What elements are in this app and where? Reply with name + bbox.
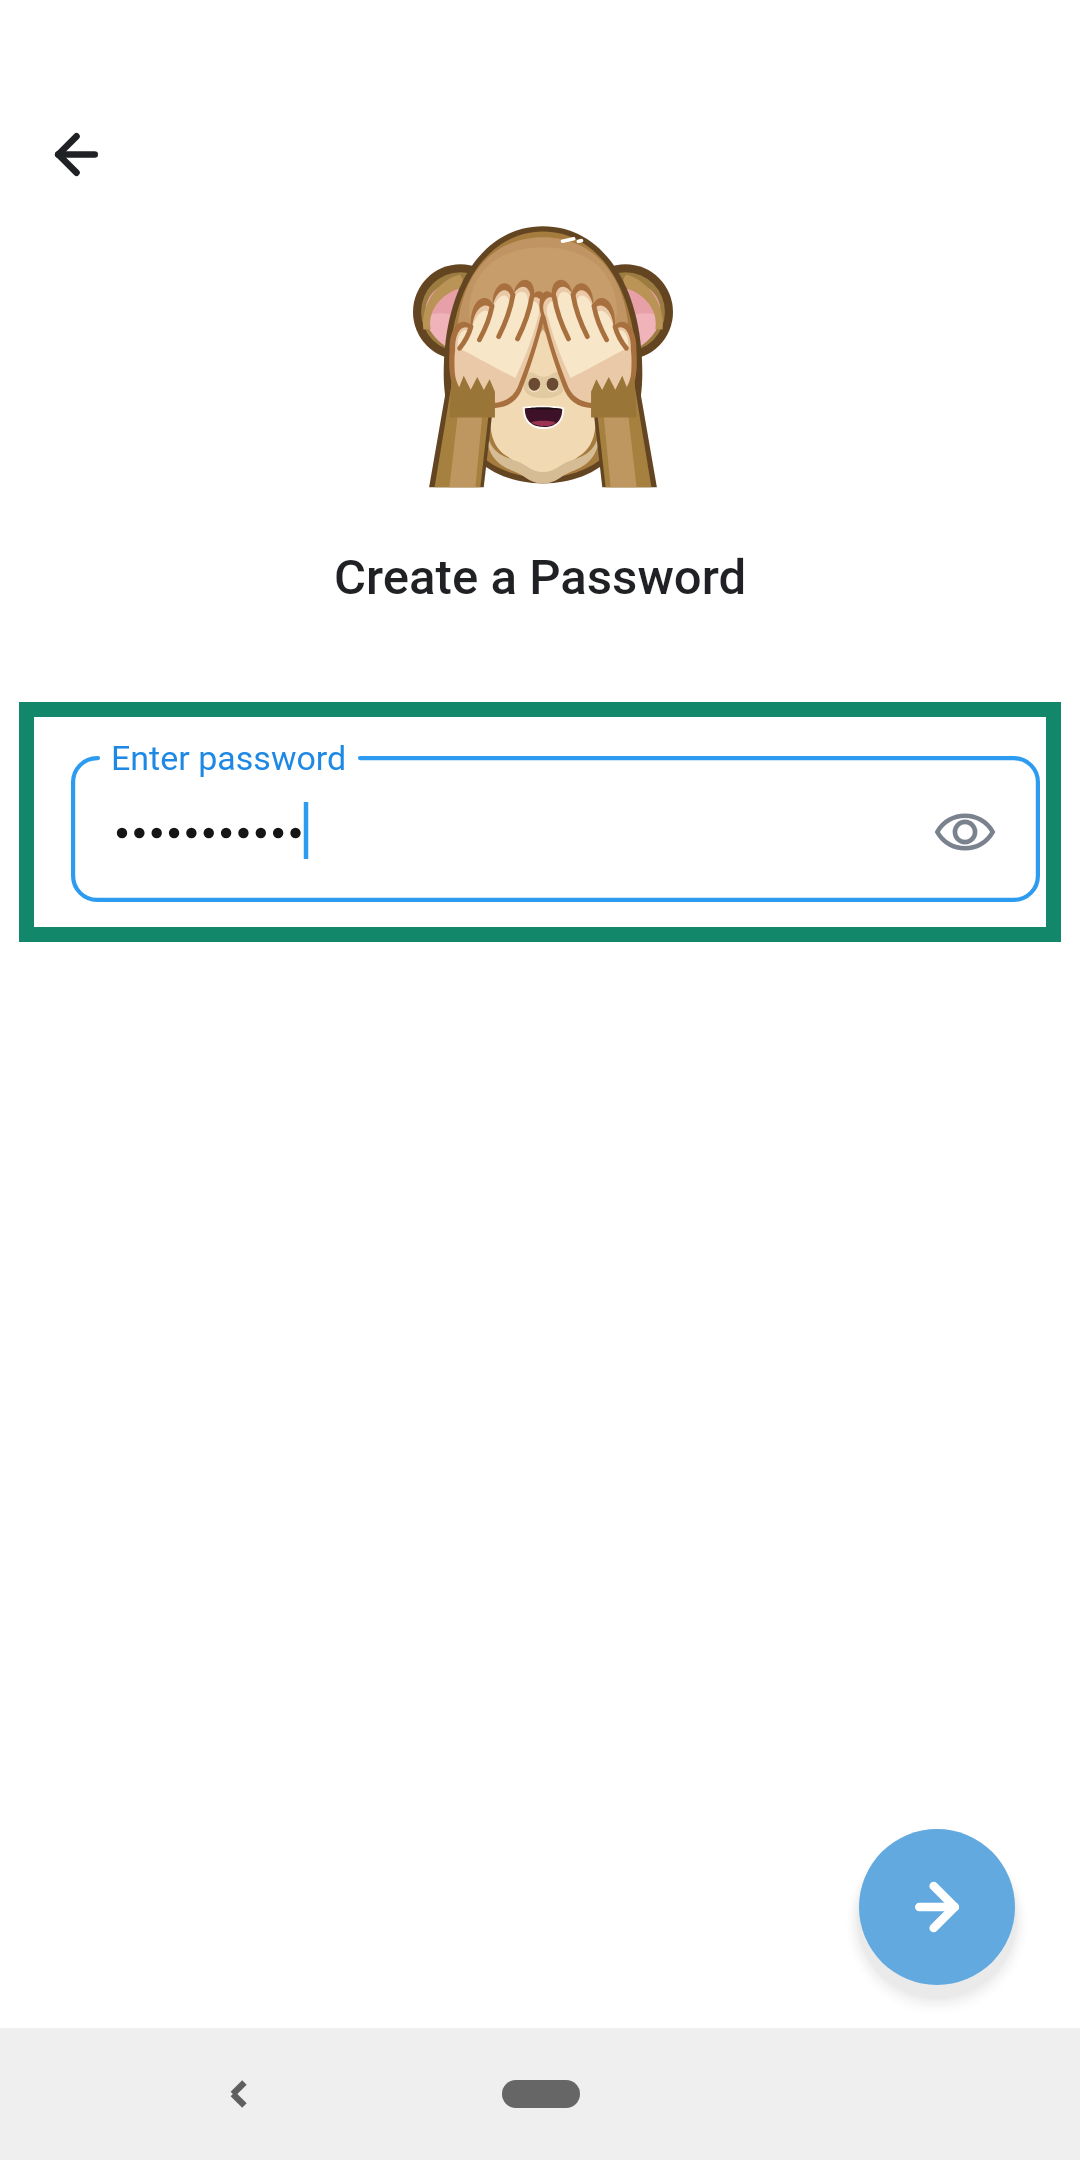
button[interactable]: Home	[502, 2080, 580, 2108]
button[interactable]: Back	[190, 2046, 286, 2142]
button[interactable]: Next	[859, 1829, 1015, 1985]
staticText: Create a Password	[334, 549, 747, 606]
staticText: Enter password	[111, 738, 347, 778]
button[interactable]: Enter password	[34, 717, 1046, 927]
button[interactable]: Show password	[916, 783, 1013, 880]
button[interactable]: Back	[30, 108, 122, 200]
